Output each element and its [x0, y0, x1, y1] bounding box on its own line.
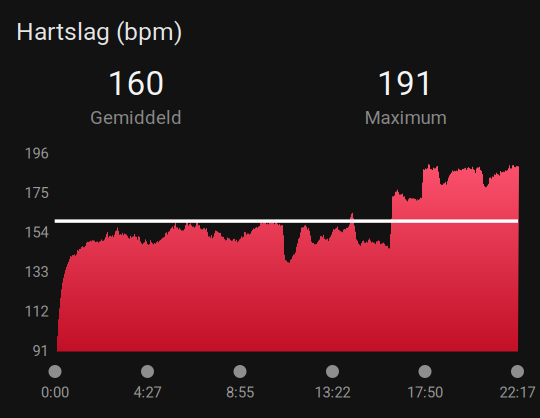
staticText: 154 — [24, 224, 48, 241]
staticText: 175 — [24, 184, 48, 202]
staticText: 22:17 — [499, 384, 535, 401]
staticText: 8:55 — [226, 384, 254, 401]
button[interactable]: 160 — [46, 68, 226, 132]
button[interactable]: 22:17 — [486, 365, 540, 407]
staticText: 4:27 — [133, 384, 161, 401]
staticText: 17:50 — [407, 384, 443, 401]
staticText: 191 — [377, 64, 434, 103]
button[interactable]: 191 — [315, 68, 495, 132]
staticText: 112 — [24, 303, 48, 320]
staticText: 91 — [32, 342, 48, 360]
staticText: Maximum — [364, 107, 446, 128]
staticText: 133 — [24, 263, 48, 281]
button[interactable]: 4:27 — [116, 365, 178, 407]
button[interactable]: 0:00 — [24, 365, 86, 407]
staticText: Hartslag (bpm) — [16, 17, 183, 46]
staticText: 196 — [24, 145, 48, 162]
button[interactable]: 8:55 — [209, 365, 271, 407]
button[interactable]: 17:50 — [394, 365, 456, 407]
staticText: 13:22 — [314, 384, 350, 401]
staticText: Gemiddeld — [90, 107, 182, 128]
staticText: 160 — [107, 64, 164, 103]
button[interactable]: 13:22 — [301, 365, 363, 407]
staticText: 0:00 — [41, 384, 69, 401]
